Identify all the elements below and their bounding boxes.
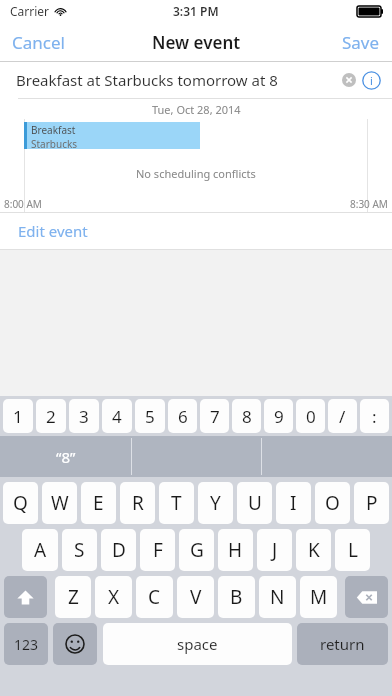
button[interactable]: Emoji (53, 623, 97, 665)
staticText: S (74, 537, 85, 563)
staticText: X (108, 584, 120, 610)
button[interactable]: Backspace (345, 576, 388, 618)
staticText: No scheduling conflicts (136, 166, 256, 181)
button[interactable]: W (42, 482, 77, 524)
staticText: Tue, Oct 28, 2014 (152, 102, 241, 117)
staticText: M (310, 584, 328, 610)
button[interactable]: 0 (296, 399, 325, 433)
staticText: 8:30 AM (350, 197, 388, 211)
button[interactable]: 9 (264, 399, 293, 433)
button[interactable]: 2 (36, 399, 66, 433)
staticText: Cancel (12, 31, 65, 54)
staticText: G (190, 537, 204, 563)
staticText: V (190, 584, 202, 610)
staticText: Y (210, 490, 221, 516)
button[interactable]: H (218, 529, 253, 571)
staticText: 5 (145, 405, 155, 428)
staticText: Q (13, 490, 28, 516)
staticText: 8:00 AM (4, 197, 42, 211)
staticText: New event (152, 31, 241, 54)
staticText: 3:31 PM (173, 3, 219, 19)
button[interactable]: P (354, 482, 389, 524)
staticText: C (148, 584, 161, 610)
staticText: space (177, 634, 218, 654)
staticText: Breakfast (31, 123, 76, 137)
button[interactable]: 8 (232, 399, 261, 433)
staticText: 3 (79, 405, 89, 428)
button[interactable]: U (237, 482, 272, 524)
staticText: T (171, 490, 182, 516)
staticText: F (153, 537, 163, 563)
button[interactable]: V (177, 576, 214, 618)
button[interactable]: C (136, 576, 173, 618)
staticText: / (339, 405, 346, 428)
button[interactable]: D (101, 529, 136, 571)
button[interactable]: L (335, 529, 370, 571)
staticText: Carrier (10, 3, 50, 19)
button[interactable]: Breakfast (24, 122, 200, 149)
staticText: P (366, 490, 378, 516)
staticText: B (230, 584, 243, 610)
button[interactable]: Cancel (0, 25, 77, 60)
button[interactable]: T (159, 482, 194, 524)
staticText: i (370, 73, 373, 88)
button[interactable]: K (296, 529, 331, 571)
staticText: E (93, 490, 104, 516)
button[interactable]: F (140, 529, 175, 571)
staticText: Starbucks (31, 137, 78, 149)
button[interactable]: 6 (168, 399, 197, 433)
staticText: O (325, 490, 340, 516)
button[interactable]: Info (360, 69, 382, 91)
button[interactable]: space (103, 623, 292, 665)
button[interactable]: G (179, 529, 214, 571)
staticText: 6 (178, 405, 188, 428)
button[interactable]: Q (3, 482, 38, 524)
button[interactable]: Z (55, 576, 91, 618)
button[interactable]: 1 (3, 399, 33, 433)
button[interactable]: 5 (135, 399, 165, 433)
staticText: return (320, 634, 365, 654)
staticText: I (290, 490, 297, 516)
staticText: 7 (210, 405, 220, 428)
staticText: D (112, 537, 126, 563)
button[interactable]: return (297, 623, 388, 665)
staticText: 8 (242, 405, 252, 428)
button[interactable]: 123 (4, 623, 48, 665)
button[interactable]: Y (198, 482, 233, 524)
button[interactable]: X (95, 576, 132, 618)
button[interactable]: / (328, 399, 357, 433)
button[interactable]: N (259, 576, 296, 618)
staticText: 1 (13, 405, 23, 428)
button[interactable]: S (62, 529, 97, 571)
staticText: 0 (306, 405, 316, 428)
button[interactable]: Shift (4, 576, 47, 618)
button[interactable]: 3 (69, 399, 99, 433)
staticText: U (248, 490, 262, 516)
staticText: H (228, 537, 243, 563)
staticText: 9 (274, 405, 284, 428)
staticText: W (51, 490, 69, 516)
button[interactable]: Save (330, 25, 392, 60)
button[interactable]: “8” (0, 436, 131, 477)
staticText: : (372, 405, 377, 428)
button[interactable]: Edit event (0, 213, 392, 249)
button[interactable]: O (315, 482, 350, 524)
button[interactable]: J (257, 529, 292, 571)
button[interactable]: 7 (200, 399, 229, 433)
button[interactable]: E (81, 482, 116, 524)
staticText: 2 (46, 405, 56, 428)
button[interactable]: : (360, 399, 389, 433)
staticText: L (348, 537, 358, 563)
staticText: R (132, 490, 144, 516)
staticText: 123 (14, 635, 39, 654)
button[interactable]: 4 (102, 399, 132, 433)
button[interactable]: A (22, 529, 58, 571)
button[interactable]: M (300, 576, 337, 618)
staticText: 4 (112, 405, 122, 428)
button[interactable]: R (120, 482, 155, 524)
button[interactable]: I (276, 482, 311, 524)
button[interactable]: Clear text (341, 72, 357, 88)
button[interactable]: B (218, 576, 255, 618)
